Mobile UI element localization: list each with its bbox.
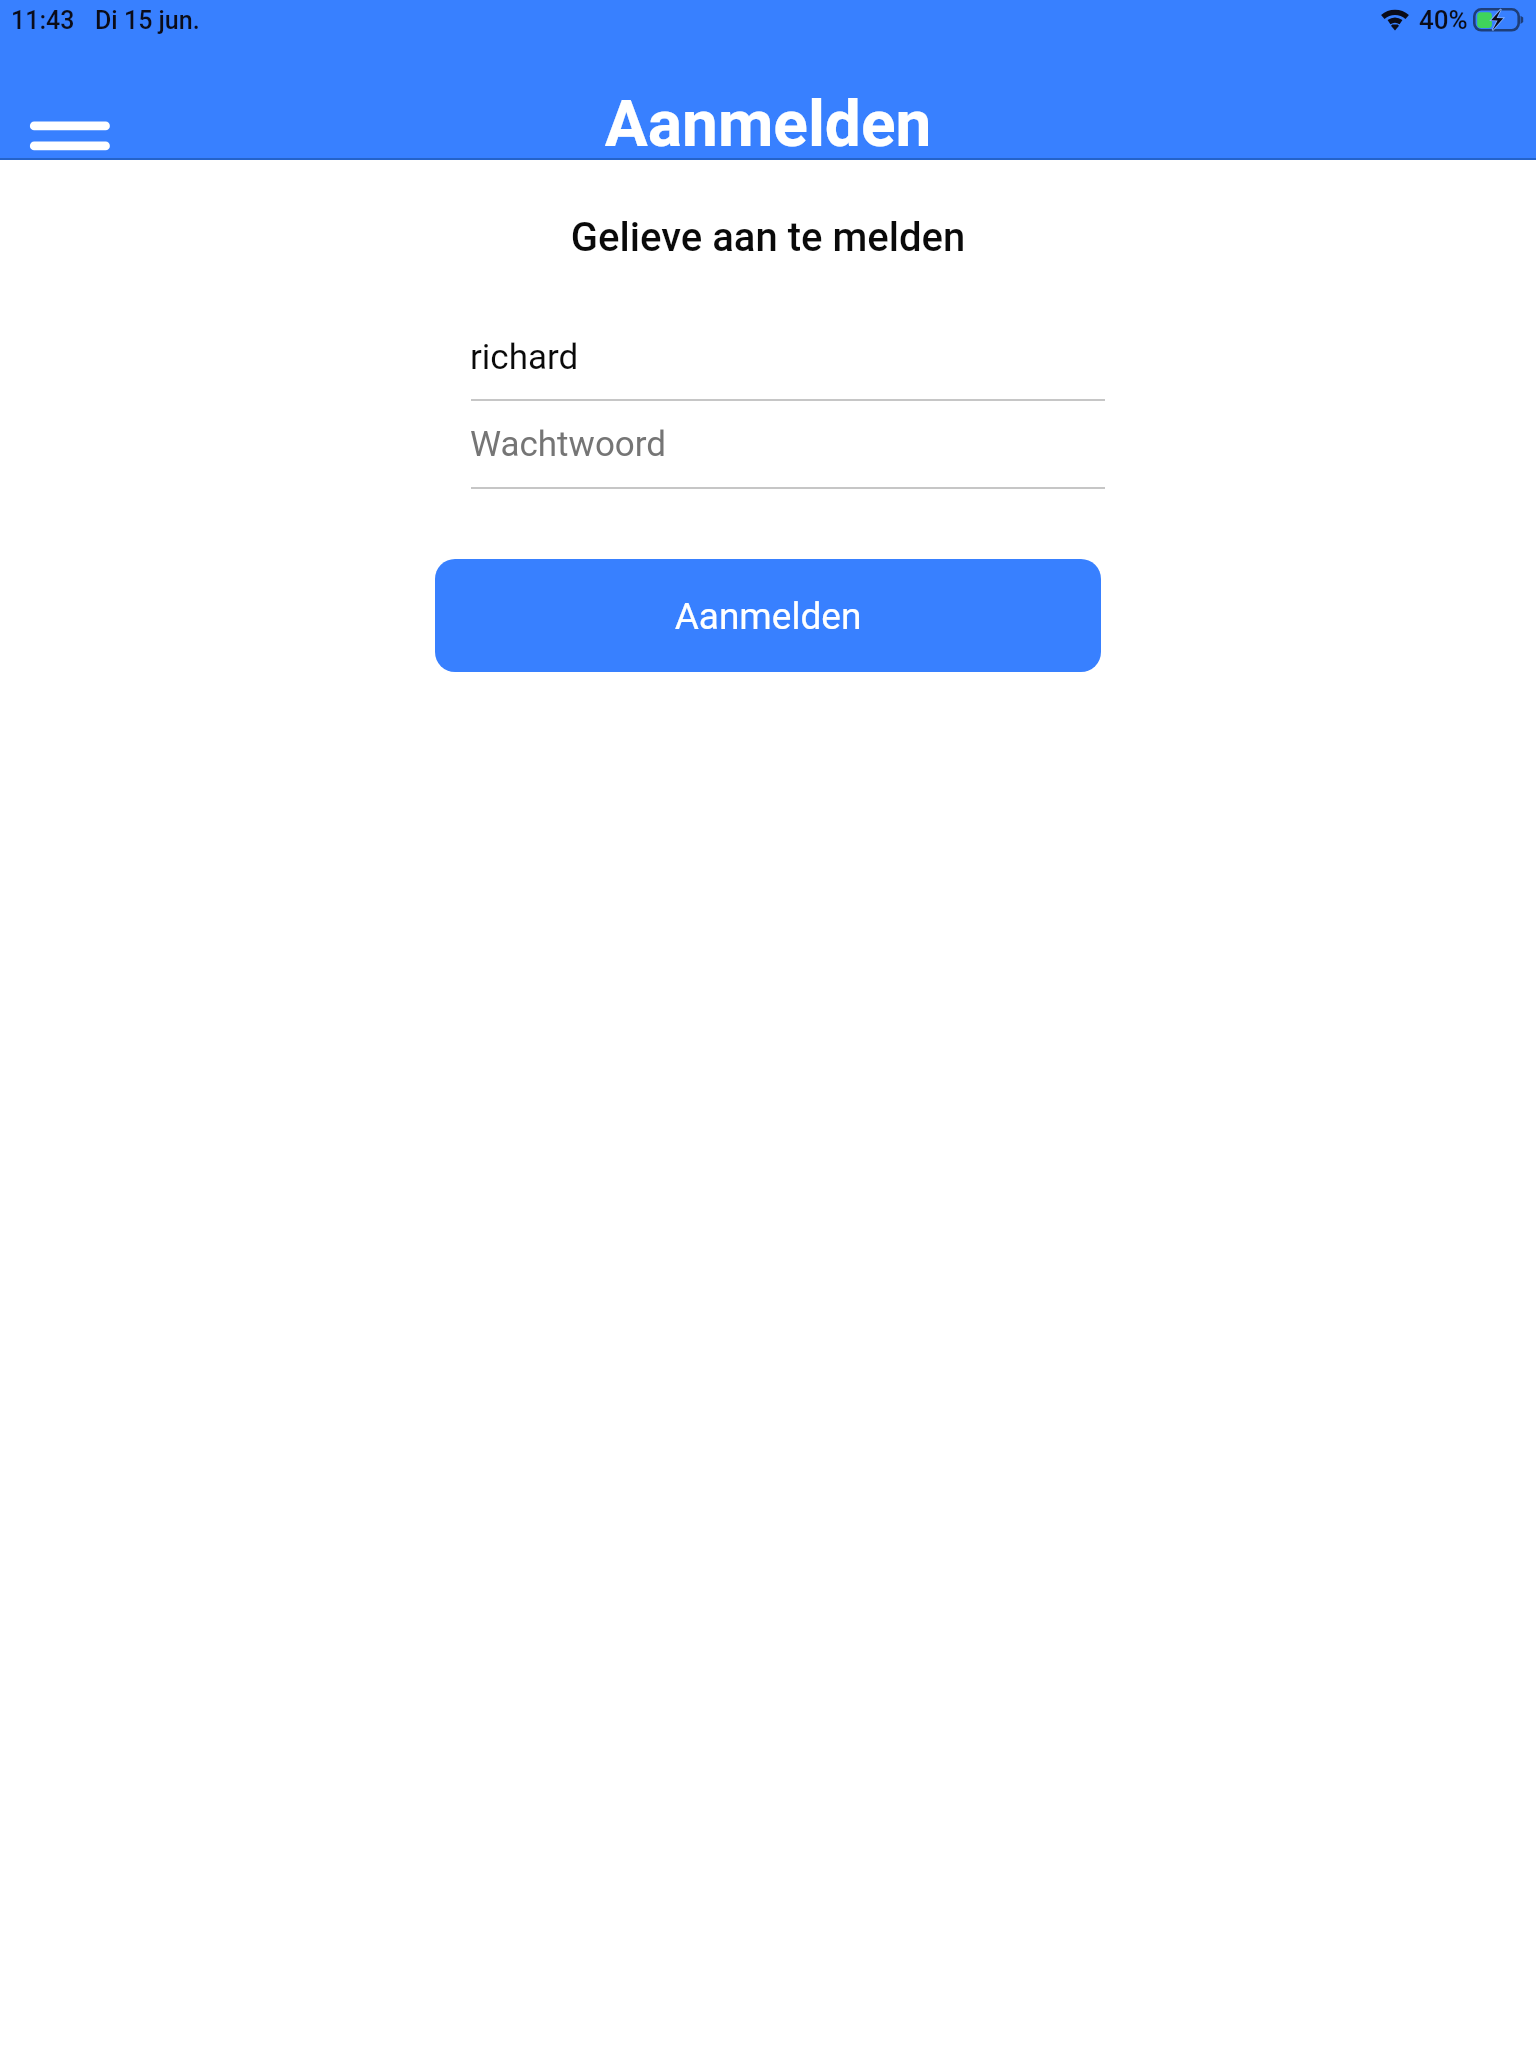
staticText: Di 15 jun.: [95, 6, 200, 35]
staticText: Aanmelden: [0, 87, 1536, 162]
button[interactable]: Wachtwoord: [471, 399, 1105, 489]
button[interactable]: richard: [471, 311, 1105, 401]
staticText: Gelieve aan te melden: [0, 214, 1536, 261]
staticText: Wachtwoord: [470, 424, 667, 465]
button[interactable]: Aanmelden: [435, 559, 1101, 672]
staticText: Aanmelden: [435, 595, 1101, 638]
button[interactable]: Menu: [6, 100, 134, 160]
staticText: richard: [470, 337, 579, 378]
staticText: 11:43: [11, 6, 75, 35]
staticText: 40%: [1419, 5, 1468, 35]
